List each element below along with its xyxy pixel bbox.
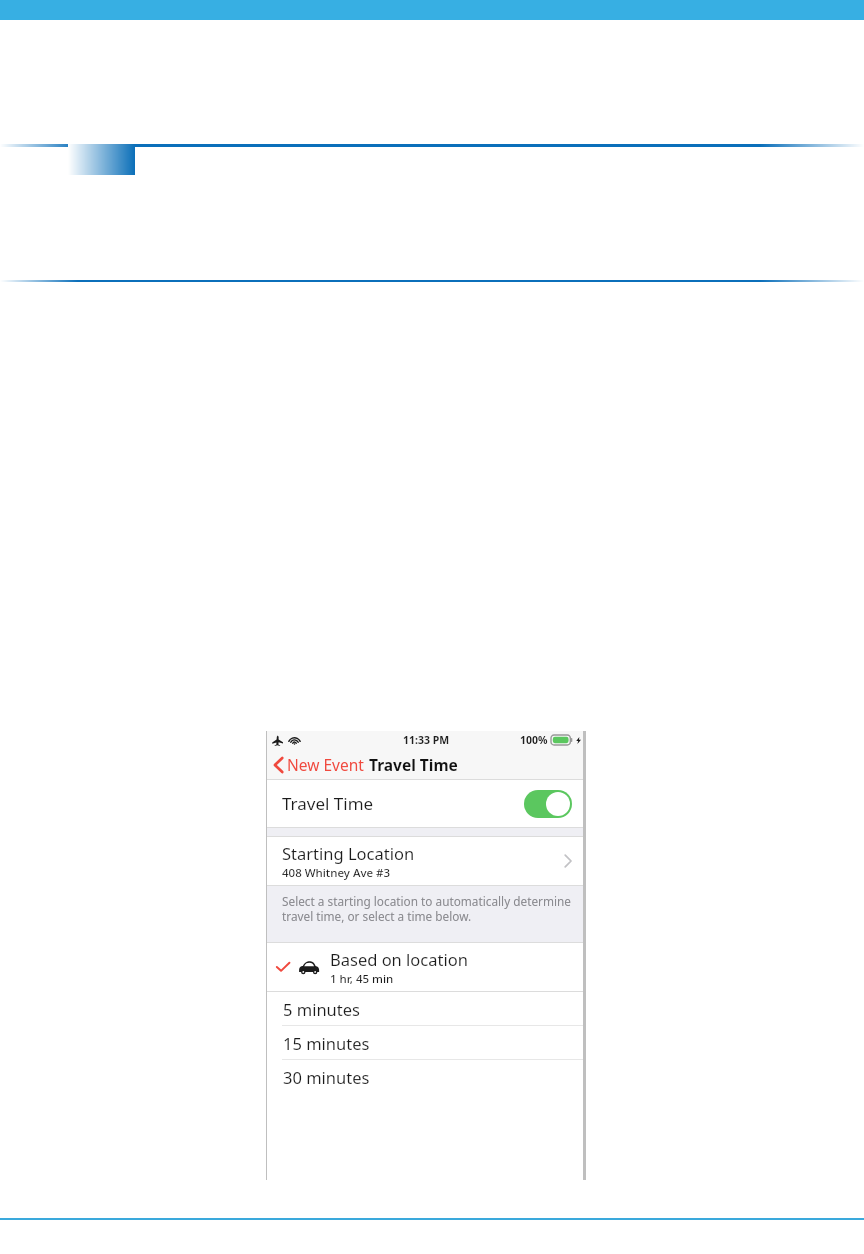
button[interactable]: Back	[266, 751, 464, 778]
staticText: 408 Whitney Ave #3	[282, 865, 391, 881]
staticText: New Event	[287, 754, 364, 775]
button[interactable]: Starting Location	[266, 837, 586, 885]
staticText: Travel Time	[369, 754, 458, 775]
staticText: 11:33 PM	[403, 733, 450, 747]
staticText: Travel Time	[282, 792, 374, 815]
staticText: 5 minutes	[283, 998, 360, 1020]
staticText: 100%	[520, 733, 548, 747]
other: Back	[274, 757, 283, 773]
button[interactable]: 15 minutes	[266, 1026, 586, 1059]
staticText: Select a starting location to automatica…	[282, 893, 572, 925]
staticText: Starting Location	[282, 842, 415, 864]
button[interactable]: Travel Time toggle	[524, 790, 572, 818]
button[interactable]: Based on location	[266, 943, 586, 991]
button[interactable]: 5 minutes	[266, 992, 586, 1025]
staticText: 30 minutes	[283, 1066, 370, 1088]
button[interactable]: Travel Time	[266, 780, 586, 827]
staticText: 15 minutes	[283, 1032, 370, 1054]
staticText: 1 hr, 45 min	[330, 971, 394, 987]
button[interactable]: 30 minutes	[266, 1060, 586, 1093]
staticText: Based on location	[330, 948, 468, 970]
